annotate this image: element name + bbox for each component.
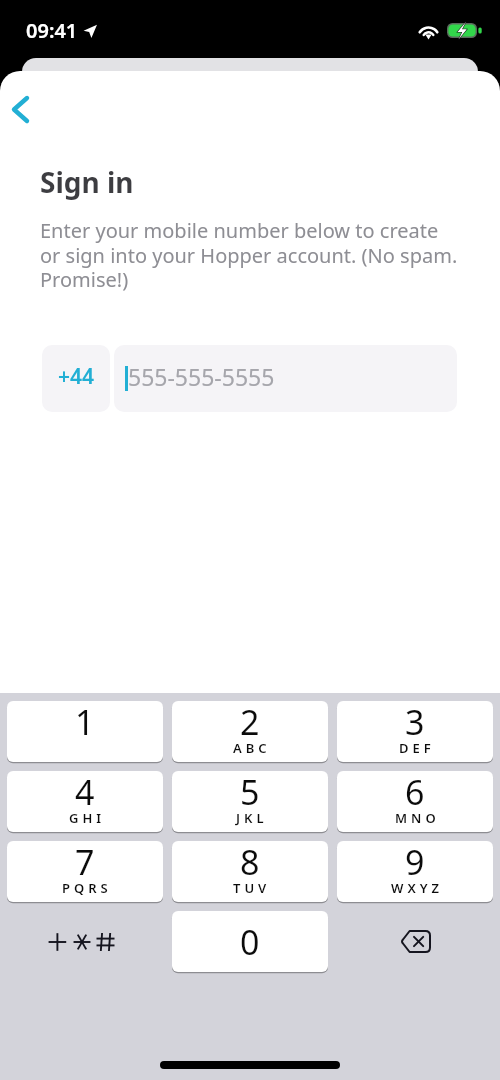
staticText: GHI <box>69 809 106 827</box>
button[interactable]: 8 <box>172 841 328 902</box>
staticText: PQRS <box>62 879 112 897</box>
staticText: Sign in <box>40 163 134 201</box>
staticText: 9 <box>405 841 425 885</box>
button[interactable]: 6 <box>337 771 493 832</box>
button[interactable]: 9 <box>337 841 493 902</box>
button[interactable]: Symbols <box>7 911 163 972</box>
button[interactable]: 4 <box>7 771 163 832</box>
staticText: +44 <box>58 362 95 391</box>
staticText: 8 <box>240 841 260 885</box>
staticText: WXYZ <box>391 879 444 897</box>
button[interactable]: 2 <box>172 701 328 762</box>
staticText: ABC <box>233 739 271 757</box>
staticText: 0 <box>240 919 260 965</box>
staticText: 555-555-5555 <box>128 361 275 392</box>
staticText: 4 <box>75 771 95 815</box>
staticText: TUV <box>233 879 271 897</box>
staticText: DEF <box>399 739 435 757</box>
button[interactable]: 5 <box>172 771 328 832</box>
staticText: 7 <box>75 841 95 885</box>
staticText: 1 <box>75 701 95 745</box>
button[interactable]: Backspace <box>337 911 493 972</box>
button[interactable]: 3 <box>337 701 493 762</box>
button[interactable]: 555-555-5555 <box>114 345 457 412</box>
button[interactable]: Back <box>0 89 40 129</box>
staticText: 2 <box>240 701 260 745</box>
button[interactable]: 0 <box>172 911 328 972</box>
staticText: 09:41 <box>26 17 78 44</box>
staticText: 3 <box>405 701 425 745</box>
staticText: JKL <box>236 809 268 827</box>
staticText: MNO <box>395 809 440 827</box>
button[interactable]: +44 <box>42 345 110 412</box>
staticText: 5 <box>240 771 260 815</box>
staticText: 6 <box>405 771 425 815</box>
button[interactable]: 1 <box>7 701 163 762</box>
button[interactable]: 7 <box>7 841 163 902</box>
staticText: Enter your mobile number below to create… <box>40 217 458 293</box>
